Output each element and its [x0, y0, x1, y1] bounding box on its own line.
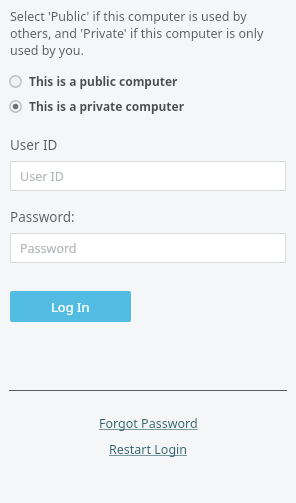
button[interactable]: User ID input field [10, 161, 286, 191]
button[interactable]: Restart Login [105, 439, 192, 460]
staticText: User ID [20, 168, 64, 185]
button[interactable]: Log In [10, 291, 131, 322]
staticText: This is a public computer [29, 73, 178, 89]
staticText: Select 'Public' if this computer is used… [10, 8, 286, 59]
button[interactable]: This is a private computer [0, 95, 296, 117]
staticText: Log In [51, 298, 90, 316]
button[interactable]: Password input field [10, 233, 286, 263]
button[interactable]: This is a public computer [0, 70, 296, 92]
staticText: Restart Login [109, 441, 188, 458]
button[interactable]: Forgot Password [95, 413, 202, 434]
staticText: User ID [10, 136, 58, 154]
staticText: Password [20, 240, 77, 257]
staticText: This is a private computer [29, 98, 185, 114]
staticText: Password: [10, 208, 75, 226]
staticText: Forgot Password [99, 415, 198, 432]
